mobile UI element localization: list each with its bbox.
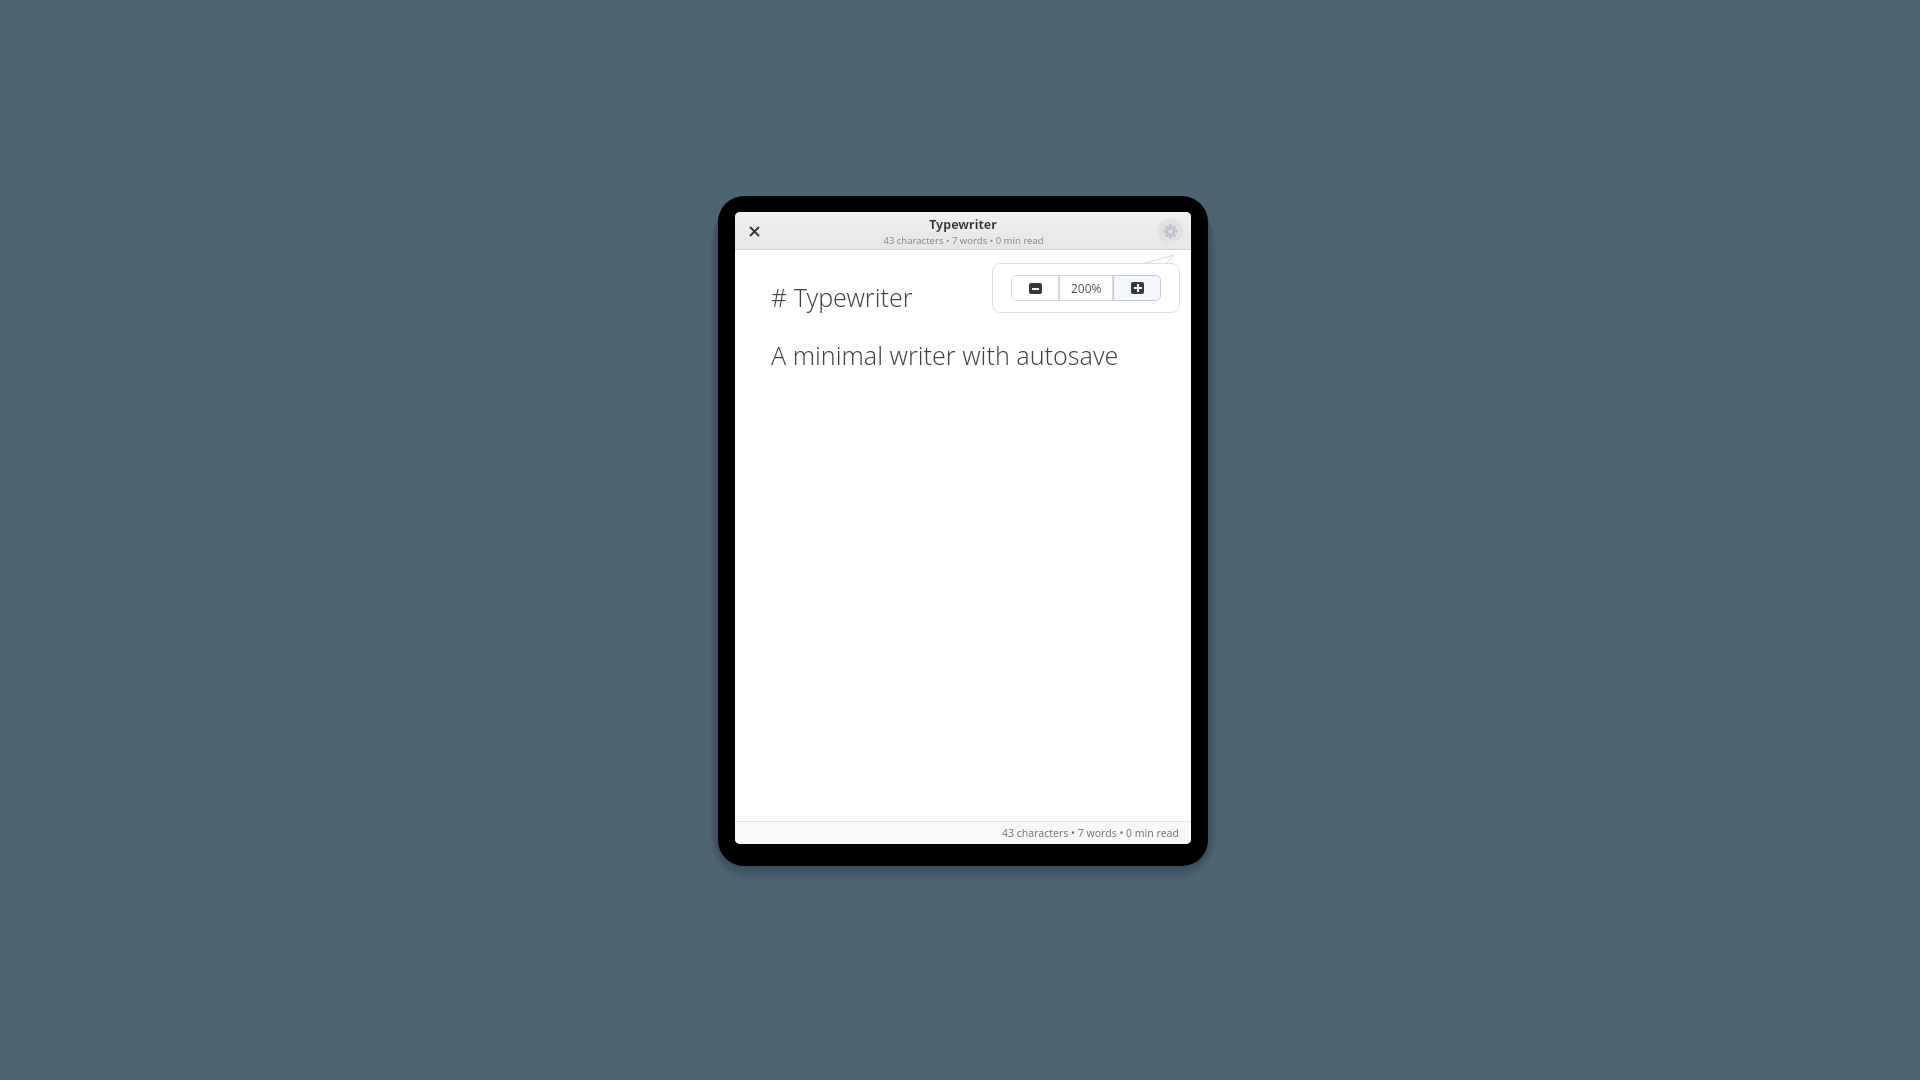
staticText: A minimal writer with autosave	[771, 338, 1119, 372]
button[interactable]: Settings	[1157, 218, 1183, 244]
staticText: # Typewriter	[771, 280, 913, 314]
button[interactable]: Zoom in	[1113, 275, 1161, 301]
staticText: Typewriter	[929, 216, 997, 233]
staticText: 43 characters • 7 words • 0 min read	[883, 234, 1044, 247]
staticText: 200%	[1071, 280, 1102, 296]
button[interactable]: Close	[741, 218, 767, 244]
staticText: 43 characters • 7 words • 0 min read	[1002, 826, 1179, 840]
button[interactable]: Zoom out	[1011, 275, 1059, 301]
